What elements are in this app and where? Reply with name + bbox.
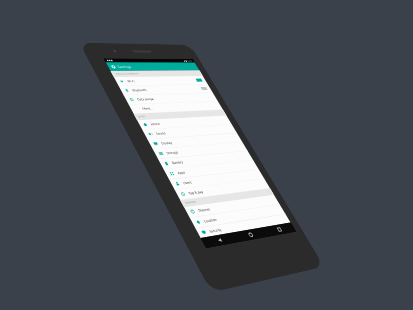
button[interactable]: Bluetooth toggle: [200, 87, 208, 90]
staticText: 12:00: [187, 60, 193, 62]
button[interactable]: Display: [147, 133, 242, 149]
staticText: Settings: [116, 65, 132, 69]
staticText: Battery: [171, 160, 184, 165]
staticText: Bluetooth: [131, 88, 147, 92]
staticText: WIRELESS & NETWORKS: [115, 72, 139, 75]
button[interactable]: Location: [190, 204, 285, 229]
staticText: Storage: [165, 150, 179, 155]
button[interactable]: More...: [129, 101, 223, 114]
staticText: Security: [208, 227, 222, 234]
staticText: Tap & pay: [187, 189, 204, 195]
staticText: Data usage: [136, 97, 154, 101]
staticText: More...: [141, 106, 153, 110]
button[interactable]: Tap & pay: [175, 179, 270, 200]
staticText: Users: [182, 180, 192, 185]
staticText: Themes: [197, 207, 211, 213]
button[interactable]: Storage: [153, 142, 248, 159]
button[interactable]: Themes: [184, 195, 280, 218]
staticText: Home: [150, 122, 161, 126]
button[interactable]: Sound: [142, 124, 237, 139]
staticText: PERSONAL: [185, 200, 197, 205]
button[interactable]: Apps: [163, 160, 259, 179]
button[interactable]: Home: [233, 227, 268, 242]
staticText: DEVICE: [138, 115, 147, 118]
button[interactable]: Back: [201, 232, 238, 248]
button[interactable]: Bluetooth: [119, 84, 213, 95]
staticText: Display: [160, 140, 173, 145]
staticText: Apps: [176, 170, 186, 175]
button[interactable]: Wi-Fi: [114, 76, 208, 86]
staticText: Wi-Fi: [126, 79, 136, 83]
button[interactable]: Data usage: [124, 93, 218, 104]
staticText: Location: [203, 217, 218, 224]
staticText: Sound: [155, 131, 167, 136]
button[interactable]: Security: [196, 214, 290, 238]
button[interactable]: Recents: [262, 222, 296, 237]
button[interactable]: Users: [169, 169, 264, 190]
button[interactable]: Settings menu: [110, 65, 117, 69]
button[interactable]: Wi-Fi toggle: [195, 79, 203, 82]
button[interactable]: Home: [137, 116, 232, 130]
button[interactable]: Battery: [158, 151, 253, 169]
